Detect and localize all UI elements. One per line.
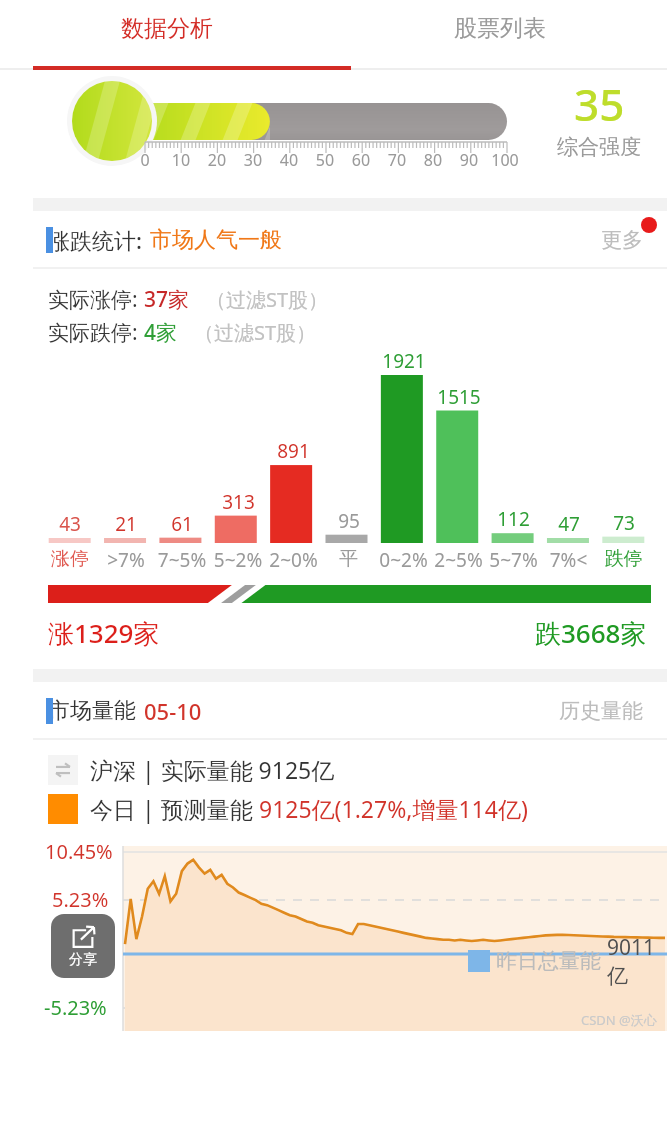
button[interactable]: 历史量能 xyxy=(559,698,643,724)
staticText: 历史量能 xyxy=(559,698,643,724)
staticText: 昨日总量能 xyxy=(496,948,601,974)
staticText: 43 xyxy=(59,511,81,537)
staticText: 市场人气一般 xyxy=(150,226,282,254)
staticText: 37家 xyxy=(144,285,190,314)
staticText: 更多 xyxy=(601,227,643,253)
staticText: 实际涨停: xyxy=(48,285,144,314)
staticText: 21 xyxy=(115,511,137,537)
staticText: 5~7% xyxy=(486,547,541,573)
staticText: 跌3668家 xyxy=(535,615,647,651)
staticText: 35 xyxy=(574,74,625,134)
staticText: 50 xyxy=(307,149,343,171)
staticText: 涨跌统计: xyxy=(48,225,142,255)
staticText: 今日 | 预测量能 xyxy=(90,793,259,824)
staticText: （过滤ST股） xyxy=(194,319,317,346)
staticText: 100 xyxy=(487,149,523,171)
staticText: 60 xyxy=(343,149,379,171)
staticText: 61 xyxy=(171,511,193,537)
button[interactable]: 股票列表 xyxy=(333,0,667,70)
staticText: 综合强度 xyxy=(557,134,641,160)
staticText: 891 xyxy=(277,438,310,464)
staticText: 90 xyxy=(451,149,487,171)
staticText: （过滤ST股） xyxy=(206,286,329,313)
staticText: 112 xyxy=(497,506,530,532)
staticText: 9125亿(1.27%,增量114亿) xyxy=(259,793,528,824)
button[interactable]: 分享 xyxy=(51,914,115,978)
staticText: 涨停 xyxy=(42,547,98,571)
button[interactable]: 更多 xyxy=(601,227,643,253)
button[interactable]: 数据分析 xyxy=(0,0,333,70)
staticText: 4家 xyxy=(144,318,178,347)
staticText: 实际跌停: xyxy=(48,318,144,347)
staticText: 10.45% xyxy=(45,838,113,865)
staticText: 1921 xyxy=(382,348,426,374)
staticText: 跌停 xyxy=(596,547,651,571)
staticText: 313 xyxy=(222,489,255,515)
staticText: 9011亿 xyxy=(607,933,667,989)
staticText: 2~0% xyxy=(266,547,321,573)
staticText: 80 xyxy=(415,149,451,171)
staticText: 5.23% xyxy=(52,886,109,913)
staticText: 股票列表 xyxy=(454,14,546,43)
staticText: 30 xyxy=(235,149,271,171)
staticText: 0~2% xyxy=(376,547,431,573)
staticText: >7% xyxy=(98,547,154,573)
staticText: 数据分析 xyxy=(121,14,213,43)
staticText: 10 xyxy=(163,149,199,171)
staticText: 20 xyxy=(199,149,235,171)
staticText: 7%< xyxy=(541,547,596,573)
staticText: 95 xyxy=(338,508,360,534)
staticText: 沪深 | 实际量能 9125亿 xyxy=(90,754,335,785)
staticText: 市场量能 xyxy=(48,697,136,725)
staticText: 平 xyxy=(321,547,376,571)
staticText: 5~2% xyxy=(210,547,266,573)
staticText: 0 xyxy=(127,149,163,171)
staticText: -5.23% xyxy=(44,994,107,1021)
staticText: 05-10 xyxy=(144,696,202,726)
staticText: 涨1329家 xyxy=(48,615,160,651)
staticText: 7~5% xyxy=(154,547,210,573)
staticText: CSDN @沃心 xyxy=(581,1011,657,1029)
staticText: 2~5% xyxy=(431,547,486,573)
staticText: 47 xyxy=(558,511,580,537)
staticText: 40 xyxy=(271,149,307,171)
staticText: 1515 xyxy=(437,384,481,410)
staticText: 分享 xyxy=(69,951,97,969)
staticText: 70 xyxy=(379,149,415,171)
staticText: 73 xyxy=(613,510,635,536)
